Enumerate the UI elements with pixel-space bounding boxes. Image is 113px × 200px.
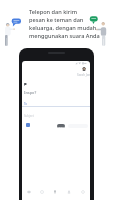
staticText: Subject [24, 114, 34, 118]
button[interactable]: Contacts [62, 187, 76, 197]
button[interactable]: Chats [22, 187, 35, 197]
button[interactable]: Voice search [48, 187, 62, 197]
staticText: Telepon dan kirim pesan ke teman dan kel… [29, 8, 100, 40]
staticText: Sarah Jane [77, 73, 90, 77]
button[interactable]: Send [57, 124, 65, 128]
button[interactable]: More [76, 187, 90, 197]
staticText: Send [58, 125, 64, 128]
button[interactable]: Calls [35, 187, 48, 197]
staticText: To [24, 102, 28, 106]
staticText: Inspo? [24, 90, 37, 95]
